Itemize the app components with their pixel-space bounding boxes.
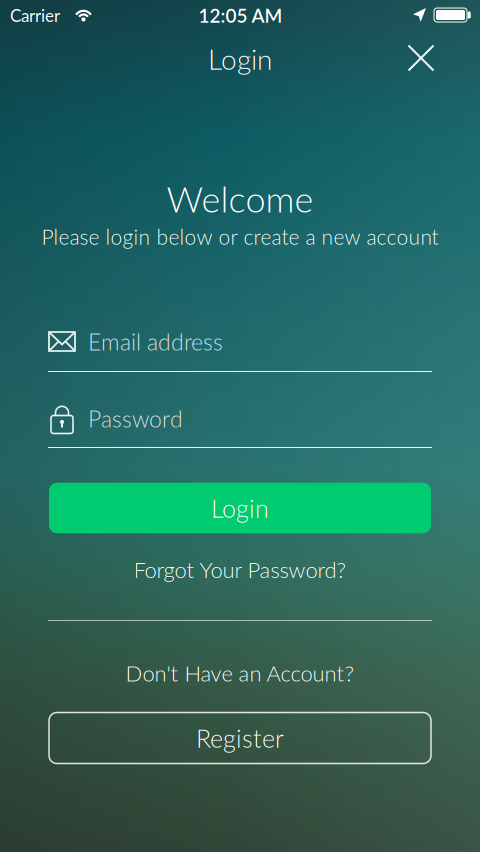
staticText: Login: [211, 493, 269, 523]
staticText: Register: [196, 723, 284, 753]
staticText: Password: [88, 405, 183, 432]
staticText: Email address: [88, 328, 223, 355]
button[interactable]: Register: [49, 712, 431, 763]
button[interactable]: Close: [406, 43, 435, 72]
staticText: Welcome: [166, 177, 313, 219]
staticText: Please login below or create a new accou…: [41, 224, 438, 249]
button[interactable]: Email address: [48, 321, 432, 361]
staticText: Forgot Your Password?: [133, 557, 346, 582]
staticText: Carrier: [10, 6, 60, 25]
button[interactable]: Password: [48, 398, 432, 438]
button[interactable]: Forgot Your Password?: [133, 557, 346, 582]
staticText: 12:05 AM: [198, 4, 282, 27]
staticText: Login: [208, 43, 272, 75]
button[interactable]: Login: [49, 483, 431, 533]
staticText: Don't Have an Account?: [125, 660, 354, 686]
